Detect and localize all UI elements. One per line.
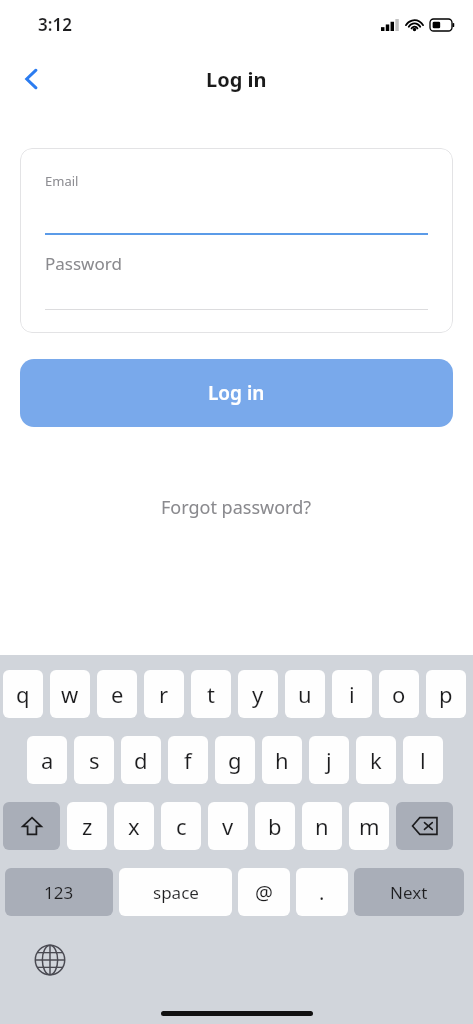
- staticText: Password: [45, 252, 122, 275]
- button[interactable]: d: [121, 736, 161, 784]
- staticText: s: [89, 745, 100, 775]
- button[interactable]: @: [238, 868, 290, 916]
- button[interactable]: 123: [5, 868, 113, 916]
- button[interactable]: z: [67, 802, 107, 850]
- staticText: a: [41, 745, 54, 775]
- staticText: n: [315, 811, 329, 841]
- staticText: r: [159, 679, 169, 709]
- button[interactable]: Forgot password?: [145, 489, 328, 526]
- button[interactable]: c: [161, 802, 201, 850]
- button[interactable]: Log in: [20, 359, 453, 427]
- button[interactable]: l: [403, 736, 443, 784]
- staticText: w: [61, 679, 79, 709]
- staticText: i: [349, 679, 355, 709]
- button[interactable]: v: [208, 802, 248, 850]
- staticText: Log in: [208, 380, 265, 406]
- button[interactable]: space: [119, 868, 232, 916]
- button[interactable]: q: [3, 670, 43, 718]
- button[interactable]: o: [379, 670, 419, 718]
- button[interactable]: g: [215, 736, 255, 784]
- staticText: u: [298, 679, 312, 709]
- button[interactable]: e: [97, 670, 137, 718]
- button[interactable]: f: [168, 736, 208, 784]
- button[interactable]: w: [50, 670, 90, 718]
- staticText: z: [82, 811, 93, 841]
- staticText: g: [228, 745, 242, 775]
- staticText: Log in: [206, 66, 267, 93]
- staticText: k: [370, 745, 382, 775]
- staticText: d: [134, 745, 148, 775]
- staticText: c: [176, 811, 187, 841]
- button[interactable]: p: [426, 670, 466, 718]
- button[interactable]: Email: [45, 148, 428, 235]
- button[interactable]: u: [285, 670, 325, 718]
- staticText: l: [420, 745, 426, 775]
- staticText: Forgot password?: [161, 495, 312, 520]
- button[interactable]: j: [309, 736, 349, 784]
- staticText: v: [222, 811, 234, 841]
- button[interactable]: Back: [8, 55, 56, 103]
- staticText: p: [439, 679, 453, 709]
- staticText: @: [255, 879, 273, 906]
- button[interactable]: t: [191, 670, 231, 718]
- button[interactable]: a: [27, 736, 67, 784]
- staticText: f: [184, 745, 192, 775]
- staticText: x: [128, 811, 140, 841]
- button[interactable]: k: [356, 736, 396, 784]
- button[interactable]: Change keyboard language: [26, 936, 74, 984]
- button[interactable]: n: [302, 802, 342, 850]
- button[interactable]: y: [238, 670, 278, 718]
- button[interactable]: r: [144, 670, 184, 718]
- button[interactable]: Backspace: [396, 802, 453, 850]
- staticText: e: [111, 679, 124, 709]
- staticText: m: [359, 811, 380, 841]
- button[interactable]: b: [255, 802, 295, 850]
- button[interactable]: m: [349, 802, 389, 850]
- staticText: b: [268, 811, 282, 841]
- staticText: Email: [45, 172, 79, 190]
- staticText: Next: [390, 881, 428, 904]
- staticText: q: [16, 679, 30, 709]
- staticText: space: [153, 881, 199, 904]
- button[interactable]: i: [332, 670, 372, 718]
- staticText: j: [326, 745, 332, 775]
- staticText: o: [392, 679, 406, 709]
- button[interactable]: s: [74, 736, 114, 784]
- staticText: .: [319, 879, 325, 906]
- staticText: t: [207, 679, 215, 709]
- button[interactable]: Shift: [3, 802, 60, 850]
- button[interactable]: .: [296, 868, 348, 916]
- staticText: 123: [44, 881, 74, 904]
- button[interactable]: Password: [45, 236, 428, 310]
- button[interactable]: h: [262, 736, 302, 784]
- staticText: 3:12: [38, 13, 72, 36]
- staticText: y: [252, 679, 264, 709]
- staticText: h: [275, 745, 289, 775]
- button[interactable]: Next: [354, 868, 464, 916]
- button[interactable]: x: [114, 802, 154, 850]
